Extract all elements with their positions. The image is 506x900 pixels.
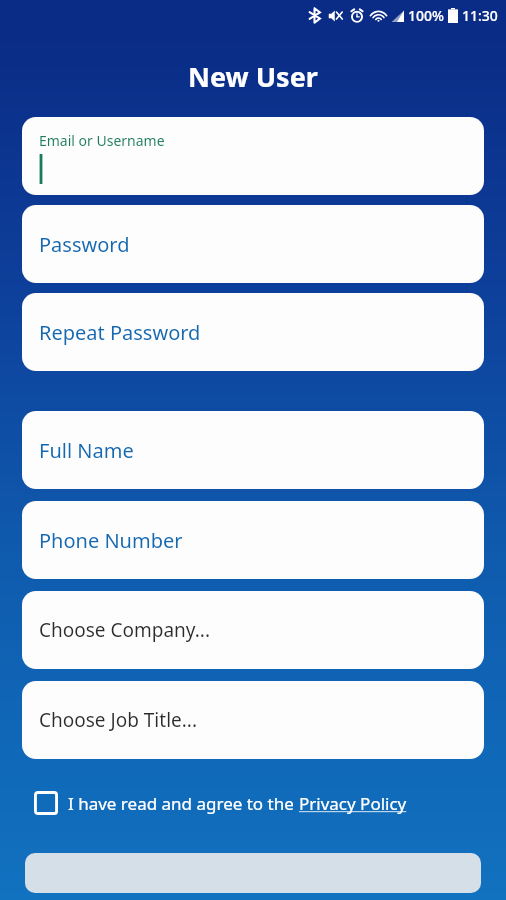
button[interactable]: Phone Number <box>22 501 484 579</box>
staticText: I have read and agree to the <box>68 792 299 815</box>
button[interactable] <box>25 853 481 893</box>
staticText: Choose Job Title... <box>39 707 198 733</box>
staticText: Phone Number <box>39 527 183 554</box>
staticText: New User <box>188 58 318 95</box>
button[interactable]: Repeat Password <box>22 293 484 371</box>
button[interactable]: Choose Company... <box>22 591 484 669</box>
button[interactable]: Email or Username <box>22 117 484 195</box>
button[interactable]: Password <box>22 205 484 283</box>
staticText: Full Name <box>39 437 134 464</box>
staticText: Choose Company... <box>39 617 211 643</box>
button[interactable]: Privacy Policy <box>299 792 407 815</box>
staticText: Repeat Password <box>39 319 201 346</box>
button[interactable]: Full Name <box>22 411 484 489</box>
button[interactable]: Agree to privacy policy checkbox <box>22 783 484 823</box>
button[interactable]: Choose Job Title... <box>22 681 484 759</box>
staticText: 100% <box>408 6 444 25</box>
other: Agree to privacy policy checkbox <box>34 791 58 815</box>
staticText: Email or Username <box>39 131 165 150</box>
staticText: Password <box>39 231 130 258</box>
staticText: 11:30 <box>462 6 498 25</box>
